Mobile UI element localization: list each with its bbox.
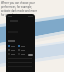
button[interactable] xyxy=(18,53,28,55)
staticText: for your device. xyxy=(1,13,20,17)
button[interactable] xyxy=(8,45,18,47)
button[interactable] xyxy=(18,45,28,47)
staticText: preferences, for example, xyxy=(1,5,33,9)
button[interactable]: Toggle dark mode xyxy=(28,54,33,56)
button[interactable] xyxy=(18,49,28,51)
button[interactable] xyxy=(8,49,18,51)
staticText: Where you can choose your xyxy=(1,1,35,5)
staticText: activate dark mode and more xyxy=(1,9,37,13)
button[interactable] xyxy=(8,53,18,55)
